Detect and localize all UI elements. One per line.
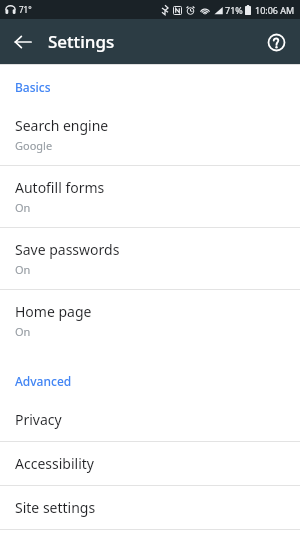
button[interactable]: Home page [0, 290, 300, 351]
button[interactable]: Site settings [0, 486, 300, 529]
staticText: Accessibility [15, 454, 94, 473]
staticText: Google [15, 138, 53, 153]
button[interactable]: Privacy [0, 398, 300, 441]
staticText: Autofill forms [15, 178, 105, 197]
staticText: 10:06 AM [255, 4, 295, 16]
button[interactable]: Save passwords [0, 228, 300, 289]
button[interactable]: Help [258, 24, 294, 60]
staticText: On [15, 200, 31, 215]
staticText: 71° [19, 4, 32, 15]
staticText: Save passwords [15, 240, 120, 259]
staticText: Advanced [15, 373, 300, 389]
button[interactable]: Accessibility [0, 442, 300, 485]
staticText: Settings [48, 30, 115, 53]
staticText: Privacy [15, 410, 62, 429]
staticText: Basics [15, 79, 300, 95]
staticText: Search engine [15, 116, 109, 135]
staticText: On [15, 262, 31, 277]
button[interactable]: Search engine [0, 104, 300, 165]
staticText: On [15, 324, 31, 339]
staticText: Site settings [15, 498, 96, 517]
staticText: 71% [225, 4, 243, 16]
button[interactable]: Back [3, 22, 43, 62]
button[interactable]: Autofill forms [0, 166, 300, 227]
staticText: Home page [15, 302, 92, 321]
